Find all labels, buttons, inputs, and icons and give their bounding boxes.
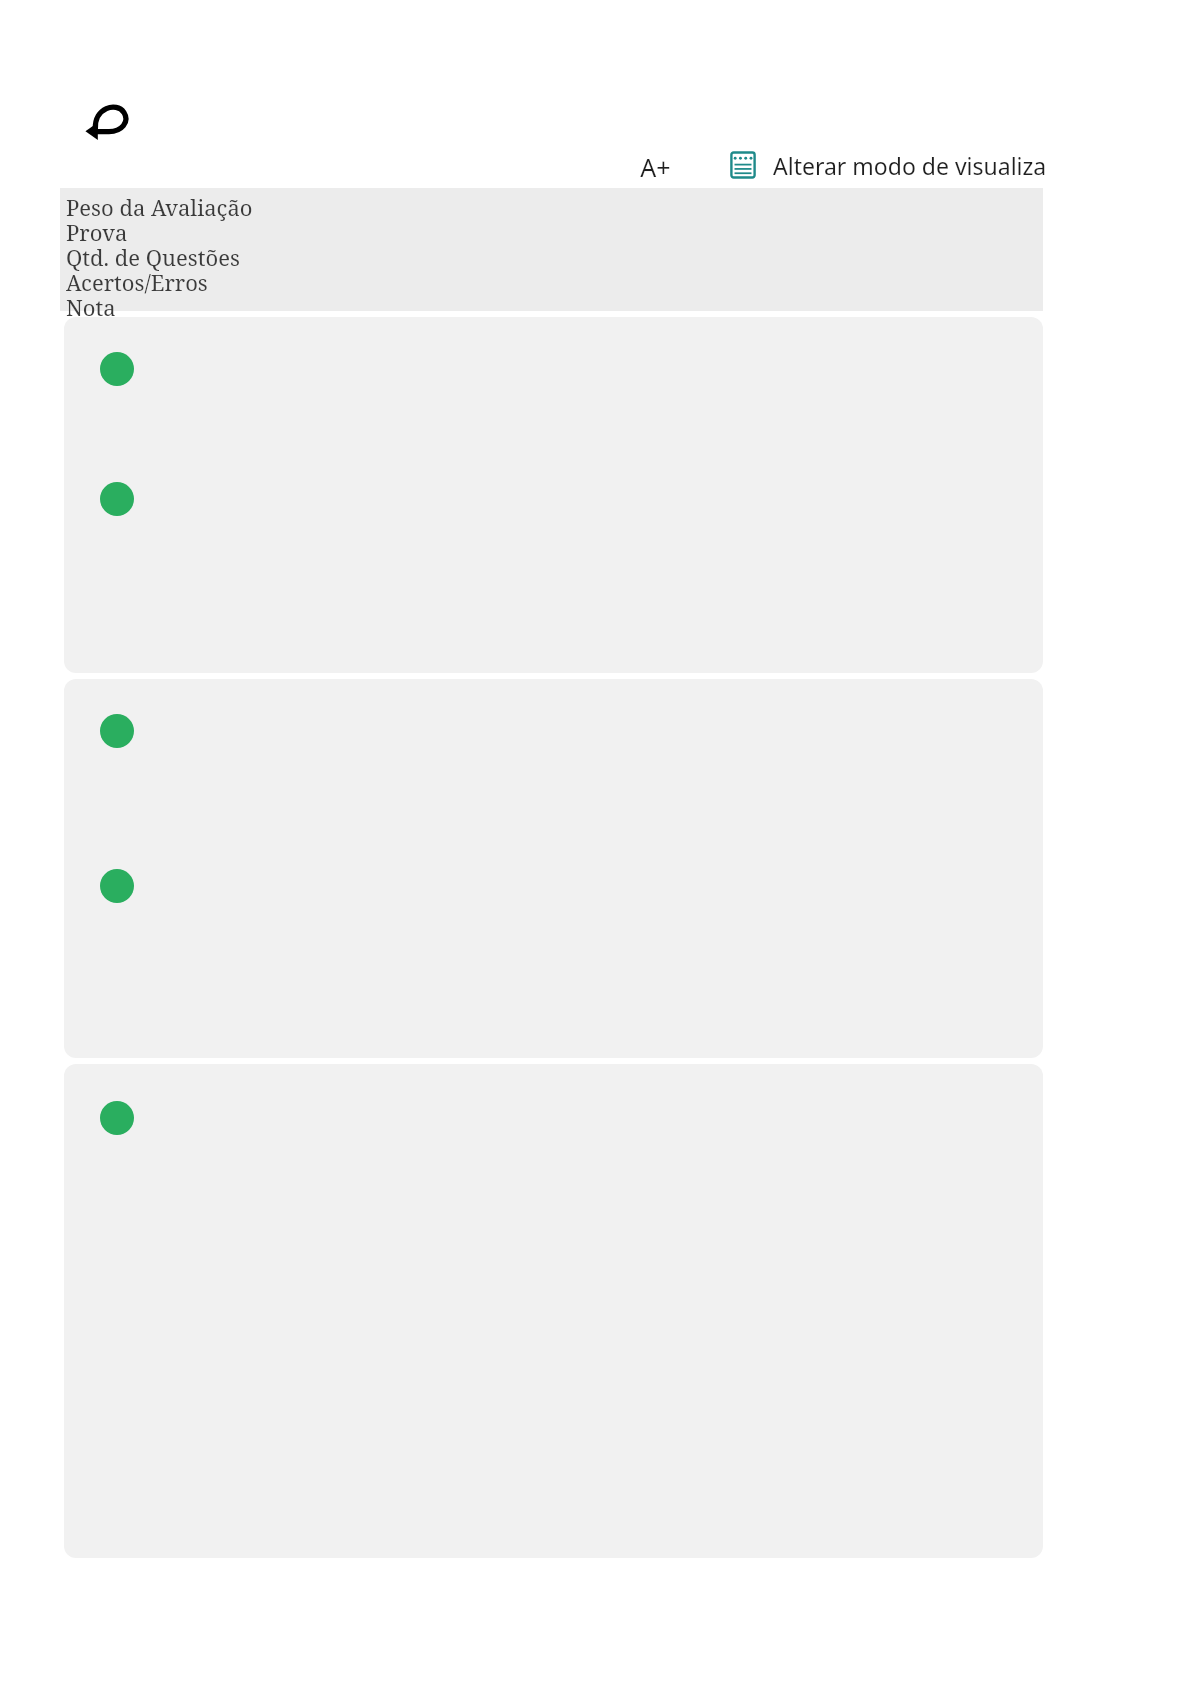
staticText: Nota [66, 292, 116, 322]
button[interactable] [64, 679, 1043, 1058]
button[interactable] [64, 317, 1043, 673]
button[interactable]: A+ [610, 146, 700, 188]
button[interactable]: Voltar [78, 92, 140, 152]
staticText: Prova [66, 217, 128, 247]
button[interactable]: Alterar modo de visualização [707, 143, 1045, 187]
staticText: A+ [640, 150, 671, 184]
staticText: Acertos/Erros [66, 267, 208, 297]
staticText: Peso da Avaliação [66, 192, 253, 222]
button[interactable] [64, 1064, 1043, 1558]
staticText: Qtd. de Questões [66, 242, 240, 272]
staticText: Alterar modo de visualização [773, 150, 1045, 181]
